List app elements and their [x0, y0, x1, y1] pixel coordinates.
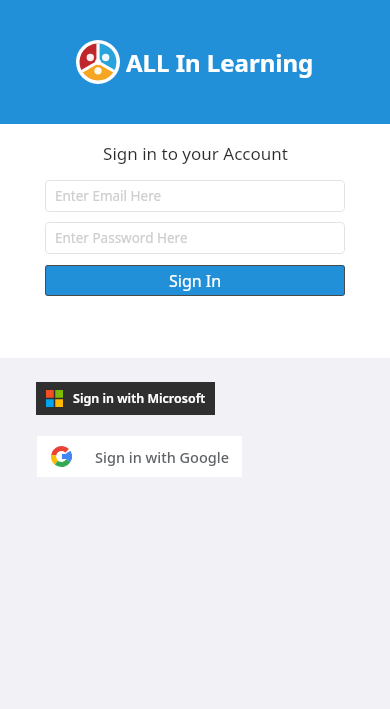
staticText: Sign In — [169, 270, 222, 292]
button[interactable]: Google logo — [37, 436, 242, 477]
staticText: Enter Password Here — [55, 229, 188, 247]
staticText: Sign in to your Account — [103, 142, 288, 165]
button[interactable]: Enter Password Here — [45, 222, 345, 254]
staticText: Sign in with Google — [95, 447, 230, 467]
button[interactable]: Microsoft logo — [36, 382, 215, 415]
staticText: Sign in with Microsoft — [73, 390, 206, 407]
other: Microsoft logo — [46, 390, 63, 407]
button[interactable]: Sign In — [45, 265, 345, 296]
staticText: Enter Email Here — [55, 187, 162, 205]
button[interactable]: Enter Email Here — [45, 180, 345, 212]
staticText: ALL In Learning — [126, 46, 314, 79]
other: Google logo — [51, 446, 72, 467]
